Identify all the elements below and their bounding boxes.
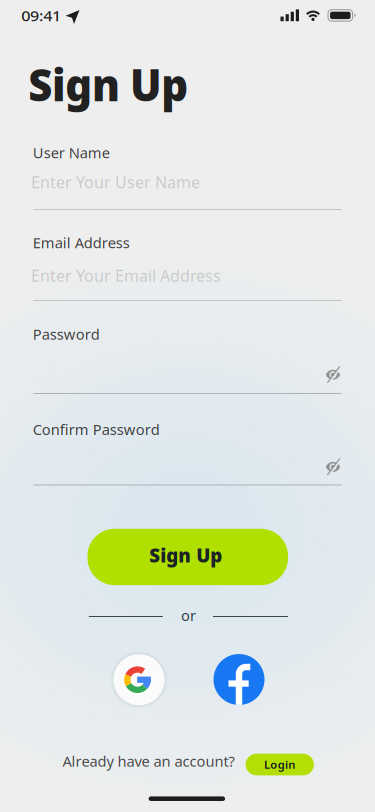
button[interactable] xyxy=(0,0,375,812)
staticText: Enter Your Email Address xyxy=(31,265,221,286)
button[interactable] xyxy=(0,0,375,812)
button[interactable]: Sign Up xyxy=(87,529,288,585)
staticText: Password xyxy=(33,324,100,344)
staticText: Email Address xyxy=(33,233,130,252)
staticText: Confirm Password xyxy=(33,420,160,439)
staticText: 09:41 xyxy=(21,6,57,25)
staticText: or xyxy=(181,605,196,625)
staticText: Login xyxy=(265,757,295,772)
staticText: Enter Your User Name xyxy=(31,171,200,192)
staticText: Already have an account? xyxy=(63,751,235,771)
staticText: Sign Up xyxy=(149,543,222,568)
staticText: Sign Up xyxy=(28,55,196,113)
staticText: User Name xyxy=(33,143,110,162)
button[interactable]: Login xyxy=(246,754,314,775)
